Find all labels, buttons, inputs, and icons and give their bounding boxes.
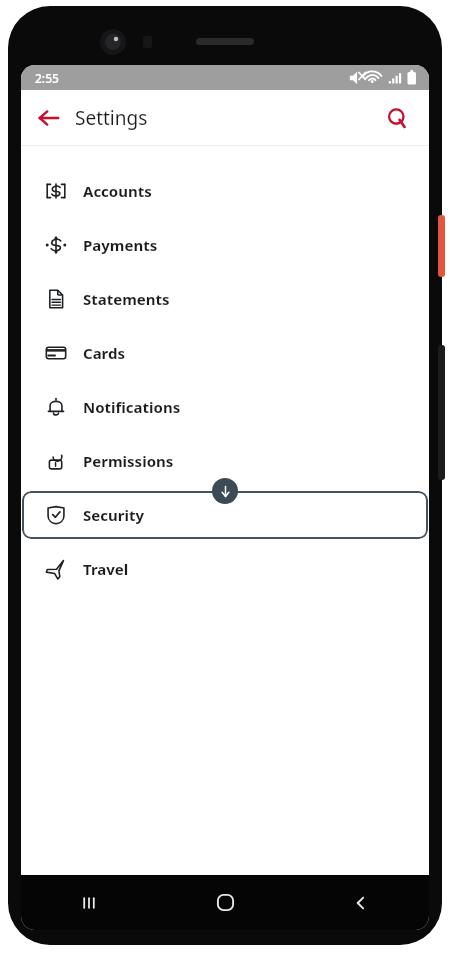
button[interactable]: Back	[29, 98, 69, 138]
button[interactable]: Search	[377, 98, 417, 138]
staticText: Permissions	[83, 451, 174, 471]
button[interactable]: Recent apps	[21, 875, 157, 930]
staticText: Payments	[83, 235, 158, 255]
button[interactable]: Home	[157, 875, 293, 930]
button[interactable]: Back	[293, 875, 429, 930]
button[interactable]: Accounts	[21, 164, 429, 218]
button[interactable]: Security	[22, 491, 428, 539]
button[interactable]: Payments	[21, 218, 429, 272]
staticText: Settings	[75, 105, 148, 131]
button[interactable]: Travel	[21, 542, 429, 596]
button[interactable]: Cards	[21, 326, 429, 380]
button[interactable]: Notifications	[21, 380, 429, 434]
staticText: Security	[83, 505, 144, 525]
staticText: Notifications	[83, 397, 181, 417]
staticText: 2:55	[35, 70, 59, 86]
staticText: Accounts	[83, 181, 152, 201]
button[interactable]: Statements	[21, 272, 429, 326]
button[interactable]: Permissions	[21, 434, 429, 488]
staticText: Cards	[83, 343, 126, 363]
staticText: Statements	[83, 289, 170, 309]
button[interactable]: Scroll down	[212, 478, 238, 504]
staticText: Travel	[83, 559, 129, 579]
